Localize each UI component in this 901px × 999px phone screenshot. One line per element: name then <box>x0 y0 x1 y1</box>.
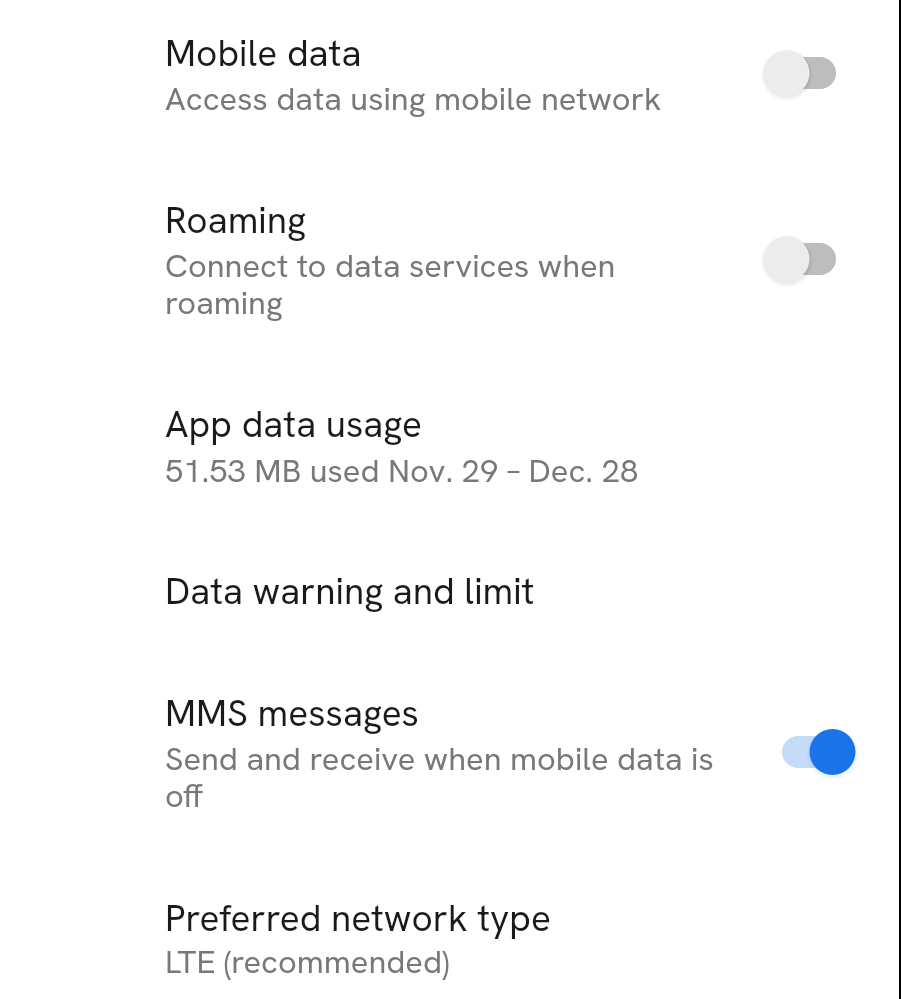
button[interactable]: MMS messages, on <box>745 712 865 792</box>
staticText: Mobile data <box>165 29 362 77</box>
staticText: 51.53 MB used Nov. 29 – Dec. 28 <box>165 449 639 491</box>
button[interactable] <box>0 863 901 999</box>
staticText: Send and receive when mobile data is off <box>165 737 714 816</box>
staticText: LTE (recommended) <box>165 940 450 982</box>
staticText: MMS messages <box>165 689 420 737</box>
staticText: Preferred network type <box>165 894 551 942</box>
button[interactable] <box>0 370 901 537</box>
staticText: App data usage <box>165 400 423 448</box>
button[interactable] <box>0 537 901 659</box>
staticText: Roaming <box>165 196 306 244</box>
button[interactable] <box>0 166 901 370</box>
staticText: Connect to data services when roaming <box>165 244 616 323</box>
button[interactable] <box>0 659 901 863</box>
staticText: Access data using mobile network <box>165 77 662 119</box>
button[interactable]: Roaming, off <box>745 219 865 299</box>
button[interactable]: Mobile data, off <box>745 33 865 113</box>
button[interactable] <box>0 8 901 166</box>
staticText: Data warning and limit <box>165 567 535 615</box>
